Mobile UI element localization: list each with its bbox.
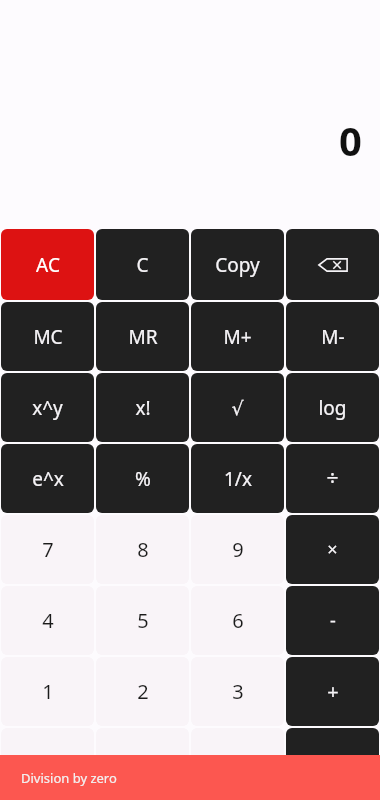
button[interactable]: ×: [286, 515, 379, 584]
staticText: 3: [232, 678, 244, 705]
button[interactable]: -: [286, 586, 379, 655]
button[interactable]: 4: [1, 586, 94, 655]
button[interactable]: 8: [96, 515, 189, 584]
button[interactable]: 9: [191, 515, 284, 584]
button[interactable]: Division by zero: [0, 755, 380, 800]
staticText: 9: [232, 536, 244, 563]
button[interactable]: [191, 728, 284, 797]
button[interactable]: ÷: [286, 444, 379, 513]
button[interactable]: M-: [286, 302, 379, 371]
staticText: M+: [223, 324, 252, 350]
staticText: 7: [42, 536, 54, 563]
button[interactable]: MC: [1, 302, 94, 371]
staticText: M-: [321, 324, 345, 350]
staticText: 1: [42, 678, 54, 705]
staticText: ÷: [326, 464, 339, 493]
staticText: 6: [232, 607, 244, 634]
button[interactable]: 2: [96, 657, 189, 726]
button[interactable]: √: [191, 373, 284, 442]
staticText: %: [135, 466, 151, 492]
staticText: 4: [42, 607, 54, 634]
button[interactable]: AC: [1, 229, 94, 300]
staticText: Copy: [215, 252, 260, 278]
staticText: 5: [137, 607, 149, 634]
button[interactable]: C: [96, 229, 189, 300]
button[interactable]: [1, 728, 94, 797]
staticText: √: [231, 397, 244, 419]
staticText: 0: [339, 113, 362, 167]
staticText: -: [330, 608, 336, 633]
staticText: AC: [36, 252, 60, 278]
button[interactable]: Backspace: [286, 229, 379, 300]
button[interactable]: 3: [191, 657, 284, 726]
button[interactable]: MR: [96, 302, 189, 371]
staticText: x^y: [32, 395, 63, 421]
staticText: 1/x: [224, 466, 252, 492]
staticText: x!: [135, 395, 151, 421]
button[interactable]: 1/x: [191, 444, 284, 513]
staticText: Division by zero: [21, 769, 117, 787]
button[interactable]: log: [286, 373, 379, 442]
button[interactable]: M+: [191, 302, 284, 371]
staticText: C: [136, 252, 149, 278]
button[interactable]: 6: [191, 586, 284, 655]
staticText: e^x: [32, 466, 64, 492]
button[interactable]: [286, 728, 379, 797]
staticText: ×: [327, 537, 338, 562]
staticText: 0: [137, 749, 149, 776]
staticText: 2: [137, 678, 149, 705]
staticText: +: [327, 678, 339, 705]
button[interactable]: %: [96, 444, 189, 513]
staticText: 8: [137, 536, 149, 563]
button[interactable]: 7: [1, 515, 94, 584]
staticText: log: [318, 395, 347, 421]
button[interactable]: x!: [96, 373, 189, 442]
button[interactable]: Copy: [191, 229, 284, 300]
button[interactable]: e^x: [1, 444, 94, 513]
staticText: MC: [33, 324, 63, 350]
button[interactable]: 0: [96, 728, 189, 797]
button[interactable]: 5: [96, 586, 189, 655]
staticText: MR: [128, 324, 158, 350]
button[interactable]: x^y: [1, 373, 94, 442]
button[interactable]: 1: [1, 657, 94, 726]
button[interactable]: +: [286, 657, 379, 726]
